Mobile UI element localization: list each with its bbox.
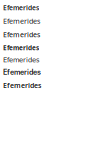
staticText: Efemerides [3, 80, 41, 90]
staticText: Efemerides [3, 16, 40, 26]
staticText: Efemerides [3, 30, 40, 39]
staticText: Efemerides [3, 43, 39, 52]
staticText: Efemerides [3, 56, 39, 64]
staticText: Efemerides [3, 68, 41, 76]
staticText: Efemerides [3, 3, 39, 12]
